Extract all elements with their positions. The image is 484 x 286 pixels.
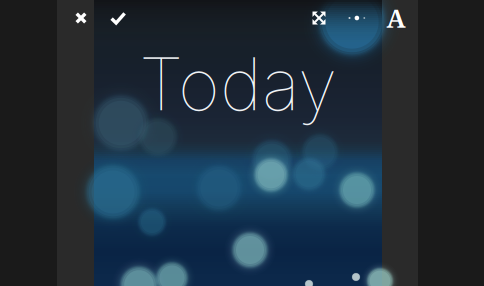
staticText: Today	[139, 40, 337, 127]
button[interactable]: Done	[99, 0, 137, 36]
staticText: A	[386, 1, 405, 35]
button[interactable]: Opacity	[338, 0, 376, 36]
button[interactable]: Cancel	[62, 0, 100, 36]
button[interactable]: Font	[377, 0, 415, 36]
button[interactable]: Resize	[300, 0, 338, 36]
